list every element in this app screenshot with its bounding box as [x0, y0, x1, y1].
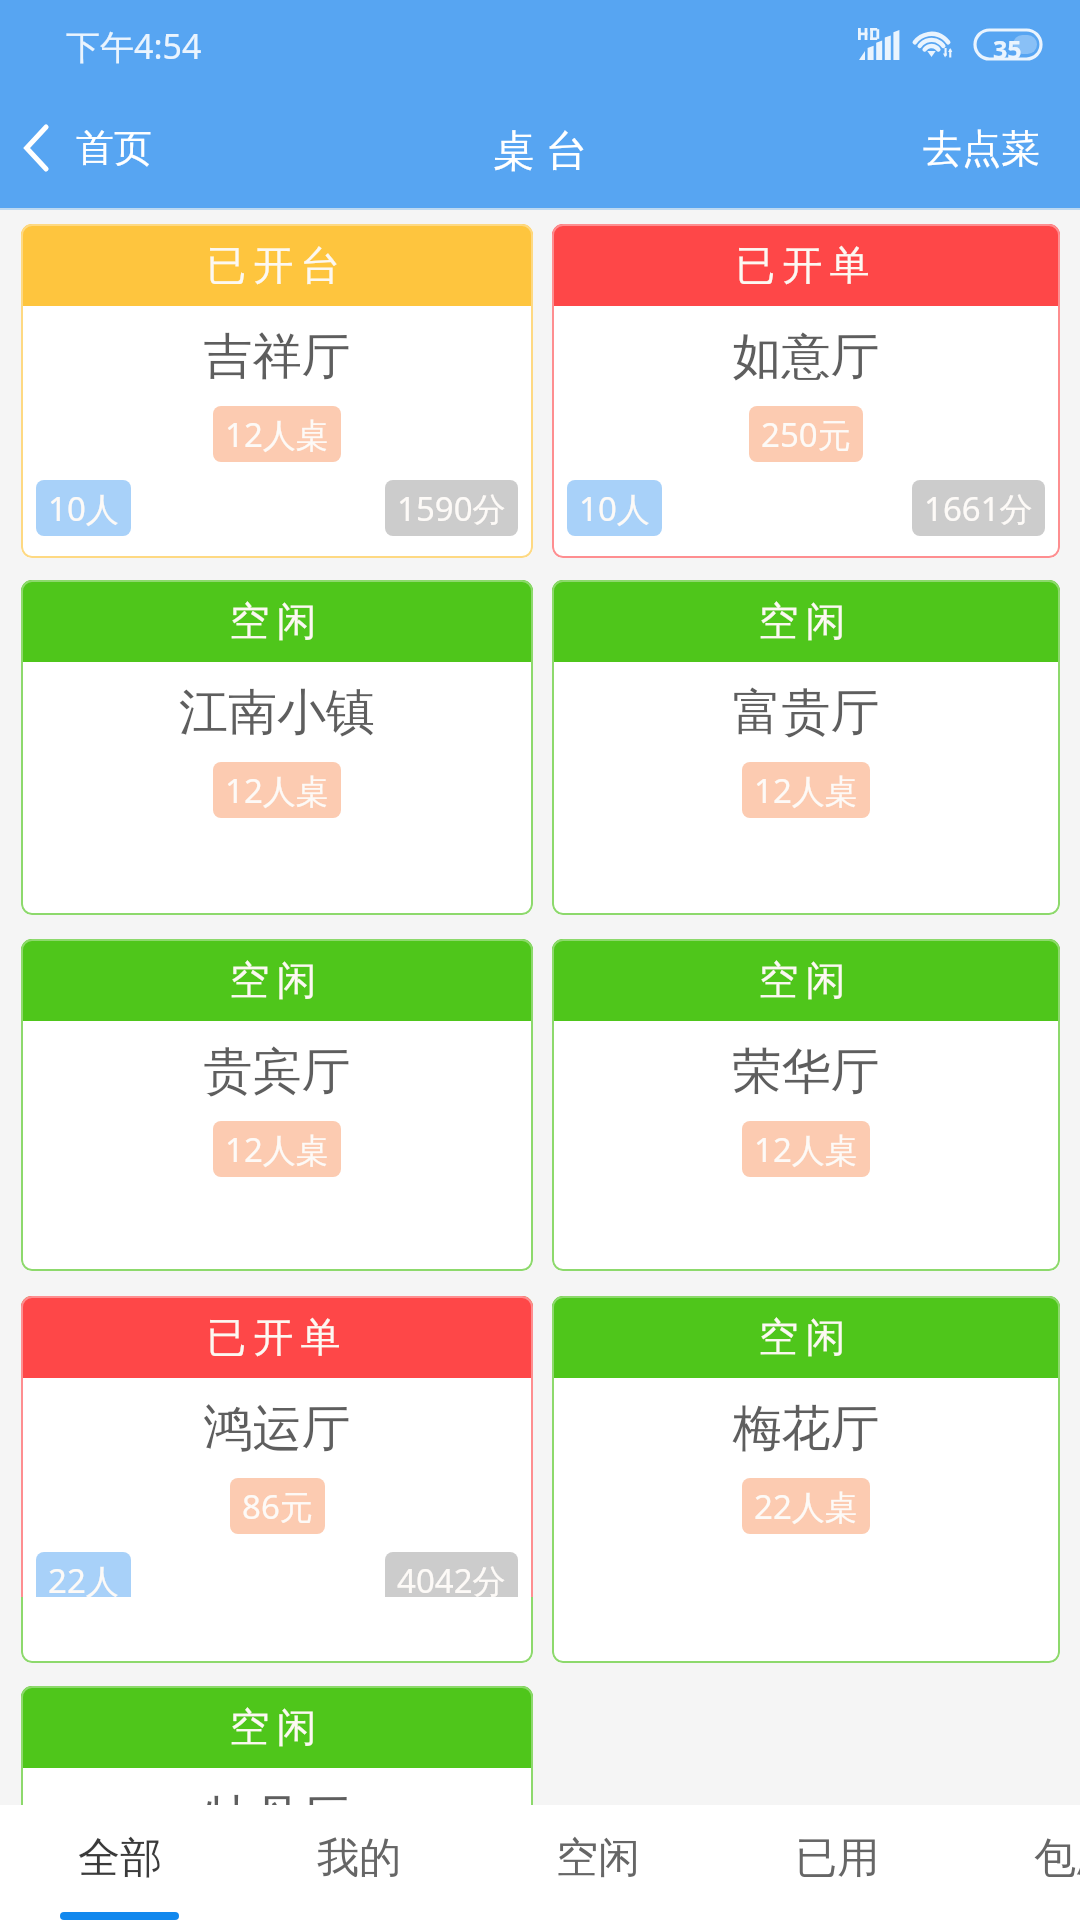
staticText: 10人 — [579, 486, 650, 531]
button[interactable]: 已开单 — [552, 224, 1060, 558]
button[interactable]: 空闲 — [21, 939, 533, 1271]
staticText: 已开台 — [203, 240, 344, 290]
staticText: 空闲 — [755, 596, 849, 646]
staticText: 玉兰厅 — [21, 1398, 533, 1460]
staticText: 包厢 — [1034, 1832, 1080, 1885]
staticText: 空闲 — [556, 1832, 640, 1885]
staticText: 桌 台 — [493, 120, 588, 177]
button[interactable]: 包厢 — [956, 1805, 1080, 1920]
staticText: 22人 — [48, 1558, 119, 1597]
staticText: 1661分 — [924, 486, 1033, 531]
staticText: 已开单 — [732, 240, 873, 290]
staticText: 富贵厅 — [552, 682, 1060, 744]
button[interactable]: 空闲 — [478, 1805, 717, 1920]
button[interactable]: 我的 — [239, 1805, 478, 1920]
staticText: 空闲 — [226, 1312, 320, 1362]
staticText: 12人桌 — [225, 768, 329, 813]
button[interactable]: 空闲 — [552, 1296, 1060, 1663]
staticText: 首页 — [76, 124, 152, 172]
button[interactable]: 已开单 — [21, 1296, 533, 1597]
staticText: 12人桌 — [225, 412, 329, 457]
staticText: 已用 — [795, 1832, 879, 1885]
staticText: 10人 — [48, 486, 119, 531]
staticText: 35 — [993, 32, 1022, 66]
staticText: 12人桌 — [754, 1127, 858, 1172]
staticText: 吉祥厅 — [21, 326, 533, 388]
staticText: 梅花厅 — [552, 1398, 1060, 1460]
staticText: 江南小镇 — [21, 682, 533, 744]
staticText: 下午4:54 — [66, 23, 202, 69]
staticText: 86元 — [242, 1484, 313, 1529]
staticText: 22人桌 — [754, 1484, 858, 1529]
button[interactable]: 空闲 — [21, 1686, 533, 1805]
button[interactable]: 已用 — [717, 1805, 956, 1920]
button[interactable]: 去点菜 — [883, 110, 1080, 187]
button[interactable]: 空闲 — [21, 1296, 533, 1663]
staticText: 鸿运厅 — [21, 1398, 533, 1460]
button[interactable]: 空闲 — [21, 580, 533, 915]
staticText: 荣华厅 — [552, 1041, 1060, 1103]
staticText: 空闲 — [755, 955, 849, 1005]
button[interactable]: 空闲 — [552, 580, 1060, 915]
button[interactable]: 全部 — [0, 1805, 239, 1920]
staticText: 如意厅 — [552, 326, 1060, 388]
staticText: 12人桌 — [225, 1127, 329, 1172]
staticText: 12人桌 — [754, 768, 858, 813]
staticText: 我的 — [317, 1832, 401, 1885]
staticText: 空闲 — [226, 596, 320, 646]
staticText: 已开单 — [203, 1312, 344, 1362]
staticText: 全部 — [78, 1832, 162, 1885]
staticText: 空闲 — [226, 955, 320, 1005]
staticText: 空闲 — [226, 1702, 320, 1752]
staticText: 贵宾厅 — [21, 1041, 533, 1103]
staticText: 1590分 — [397, 486, 506, 531]
staticText: 250元 — [761, 412, 851, 457]
button[interactable]: 已开台 — [21, 224, 533, 558]
staticText: 4042分 — [397, 1558, 506, 1597]
staticText: 空闲 — [755, 1312, 849, 1362]
button[interactable]: 空闲 — [552, 939, 1060, 1271]
staticText: 牡丹厅 — [21, 1788, 533, 1805]
staticText: 12人桌 — [225, 1484, 329, 1529]
button[interactable]: 返回首页 — [0, 110, 176, 186]
